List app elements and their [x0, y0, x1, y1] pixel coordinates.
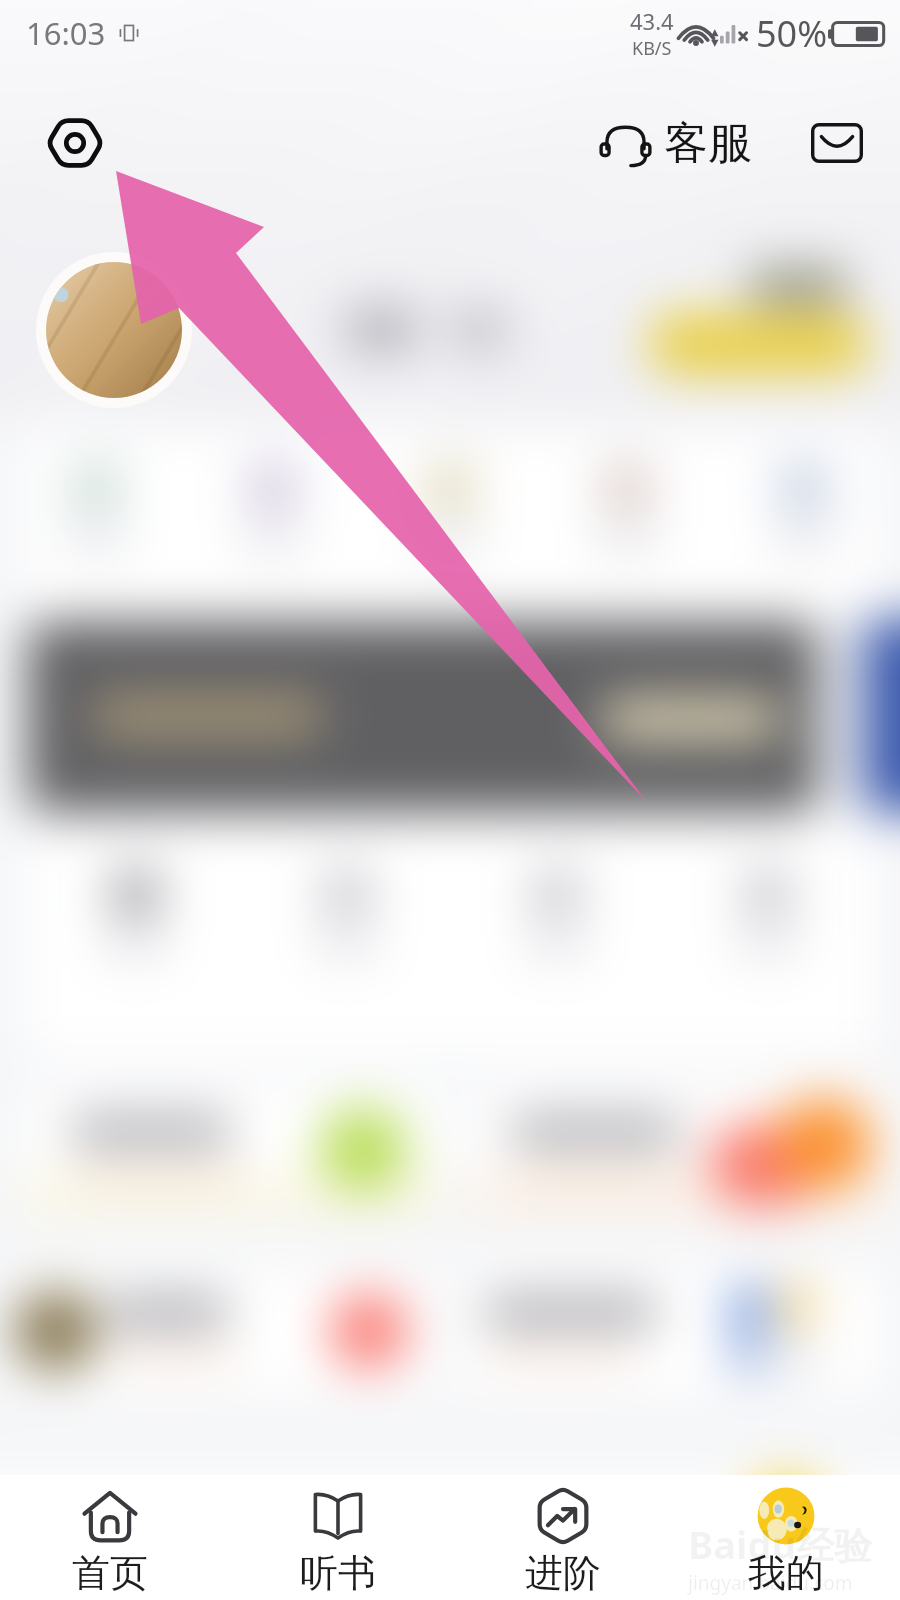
staticText: 进阶 [525, 1549, 601, 1597]
staticText: 客服 [664, 116, 752, 171]
button[interactable]: Profile photo [36, 252, 192, 408]
button[interactable]: 进阶 [468, 1475, 658, 1600]
button[interactable]: Messages [804, 110, 870, 176]
button[interactable] [467, 1086, 886, 1214]
button[interactable]: 客服 [595, 116, 756, 171]
staticText: 听书 [300, 1549, 376, 1597]
staticText: 16:03 [26, 12, 106, 54]
staticText: 43.4 [630, 6, 674, 36]
staticText: KB/S [632, 36, 672, 61]
button[interactable]: Settings [39, 107, 111, 179]
button[interactable] [8, 1268, 432, 1394]
button[interactable] [458, 1268, 882, 1394]
staticText: 首页 [72, 1549, 148, 1597]
button[interactable]: 首页 [15, 1475, 205, 1600]
staticText: Baidu经验 [688, 1518, 873, 1570]
staticText: 50% [756, 9, 828, 58]
staticText: 我的 [748, 1549, 824, 1597]
staticText: jingyan.baidu.com [688, 1570, 853, 1596]
button[interactable]: 听书 [243, 1475, 433, 1600]
button[interactable]: 我的 [691, 1475, 881, 1600]
button[interactable] [22, 1086, 441, 1214]
